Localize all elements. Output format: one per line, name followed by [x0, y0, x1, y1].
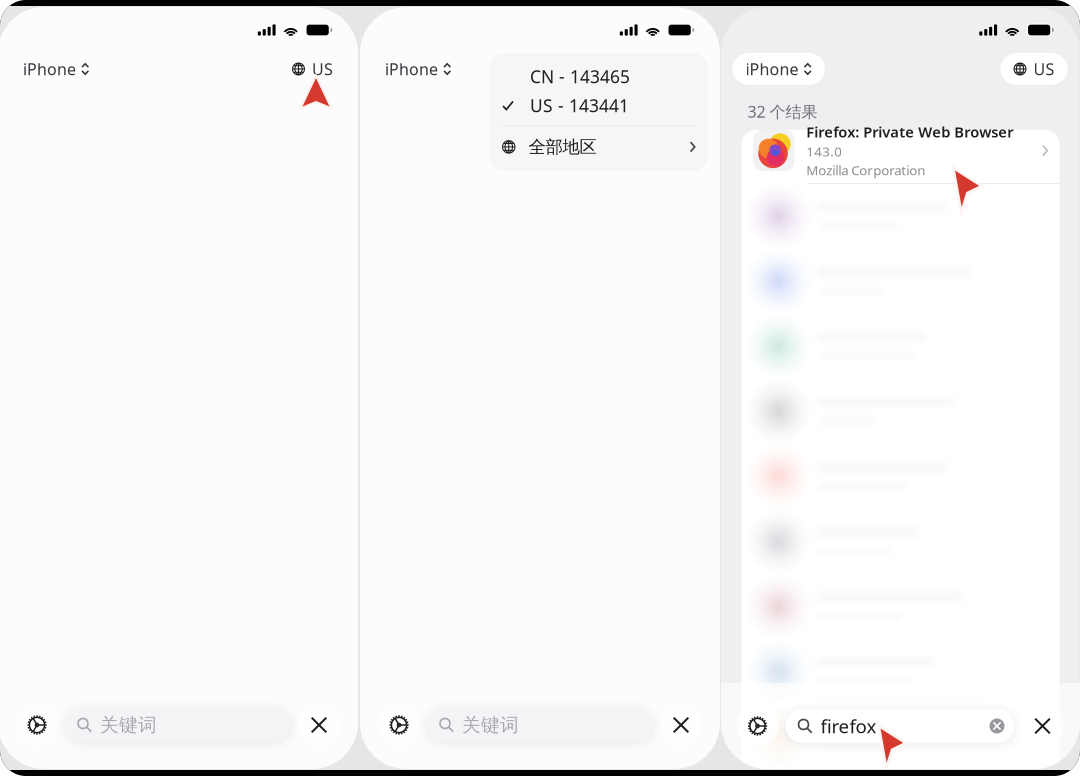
- staticText: iPhone: [745, 58, 798, 80]
- staticText: US - 143441: [530, 94, 629, 117]
- button[interactable]: 关键词: [65, 708, 291, 741]
- button[interactable]: iPhone: [372, 53, 464, 85]
- staticText: US: [312, 58, 333, 80]
- button[interactable]: US - 143441: [490, 91, 708, 120]
- staticText: 关键词: [100, 713, 157, 736]
- staticText: 32 个结果: [747, 101, 817, 122]
- button[interactable]: Firefox: Private Web Browser: [739, 118, 1062, 183]
- button[interactable]: firefox: [785, 709, 1014, 742]
- staticText: 关键词: [462, 713, 519, 736]
- staticText: 全部地区: [528, 136, 596, 158]
- button[interactable]: Close: [660, 704, 702, 746]
- button[interactable]: Settings: [16, 704, 58, 746]
- button[interactable]: 关键词: [427, 708, 653, 741]
- button[interactable]: US: [1000, 53, 1067, 85]
- button[interactable]: US: [279, 53, 346, 85]
- button[interactable]: Settings: [736, 705, 778, 747]
- staticText: iPhone: [23, 58, 76, 80]
- staticText: US: [1033, 58, 1054, 80]
- staticText: Mozilla Corporation: [806, 161, 925, 179]
- staticText: iPhone: [385, 58, 438, 80]
- button[interactable]: Close: [1021, 705, 1063, 747]
- button[interactable]: Settings: [378, 704, 420, 746]
- button[interactable]: Close: [298, 704, 340, 746]
- button[interactable]: 全部地区: [490, 132, 708, 162]
- staticText: 143.0: [806, 143, 842, 160]
- button[interactable]: iPhone: [10, 53, 102, 85]
- button[interactable]: CN - 143465: [490, 62, 708, 91]
- staticText: firefox: [820, 714, 876, 738]
- staticText: CN - 143465: [530, 65, 630, 88]
- staticText: Firefox: Private Web Browser: [806, 122, 1013, 142]
- button[interactable]: iPhone: [732, 53, 825, 85]
